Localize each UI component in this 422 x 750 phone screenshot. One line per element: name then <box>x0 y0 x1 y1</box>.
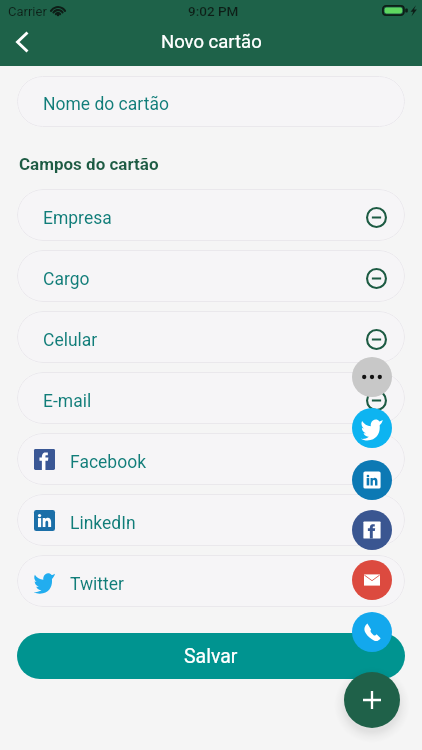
staticText: Nome do cartão <box>43 94 169 115</box>
staticText: Campos do cartão <box>19 154 159 174</box>
staticText: Facebook <box>70 452 146 473</box>
staticText: Novo cartão <box>161 31 262 53</box>
button[interactable]: E-mail <box>17 372 405 424</box>
button[interactable]: Twitter <box>17 555 405 607</box>
button[interactable]: Cargo <box>17 250 405 302</box>
button[interactable]: Facebook <box>352 510 392 550</box>
button[interactable]: Nome do cartão <box>17 76 405 127</box>
button[interactable]: LinkedIn <box>17 494 405 546</box>
staticText: Celular <box>43 330 98 351</box>
button[interactable]: Remove Cargo <box>366 268 387 289</box>
staticText: Carrier <box>8 4 47 19</box>
button[interactable]: Phone <box>352 612 392 652</box>
staticText: Empresa <box>43 208 112 229</box>
button[interactable]: Remove Empresa <box>366 207 387 228</box>
staticText: LinkedIn <box>70 513 136 534</box>
staticText: Cargo <box>43 269 90 290</box>
button[interactable]: More <box>352 357 392 397</box>
staticText: 9:02 PM <box>188 3 239 19</box>
button[interactable]: Remove Celular <box>366 329 387 350</box>
staticText: Twitter <box>70 574 125 595</box>
button[interactable]: Empresa <box>17 189 405 241</box>
button[interactable]: Back <box>0 20 44 64</box>
button[interactable]: Facebook <box>17 433 405 485</box>
staticText: E-mail <box>43 391 92 412</box>
staticText: Salvar <box>184 645 238 668</box>
button[interactable]: Celular <box>17 311 405 363</box>
button[interactable]: E-mail <box>352 560 392 600</box>
button[interactable]: Salvar <box>17 633 405 679</box>
button[interactable]: Remove E-mail <box>366 390 387 411</box>
button[interactable]: Add <box>344 672 400 728</box>
button[interactable]: LinkedIn <box>352 460 392 500</box>
button[interactable]: Twitter <box>352 408 392 448</box>
